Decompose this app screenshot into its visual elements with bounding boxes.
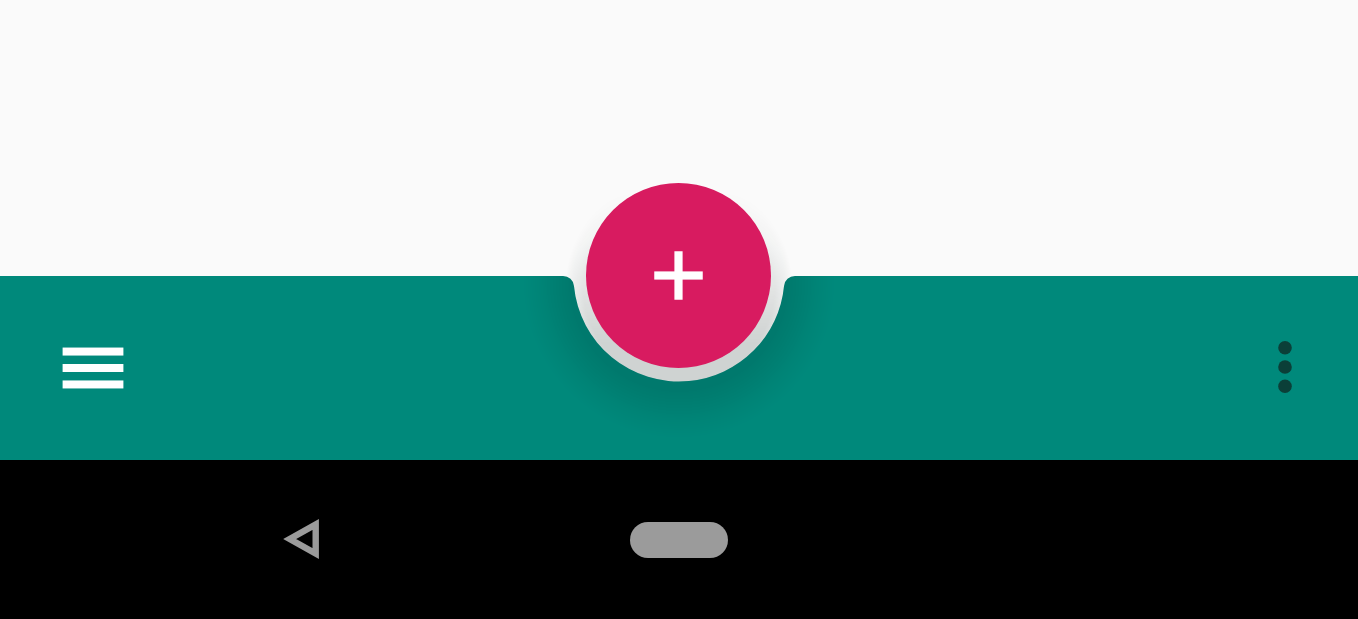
button[interactable]: More options xyxy=(1245,327,1325,407)
button[interactable]: Back xyxy=(261,499,341,579)
button[interactable]: Home xyxy=(630,522,728,558)
button[interactable]: Navigation menu xyxy=(53,328,133,408)
button[interactable]: Add xyxy=(586,183,771,368)
